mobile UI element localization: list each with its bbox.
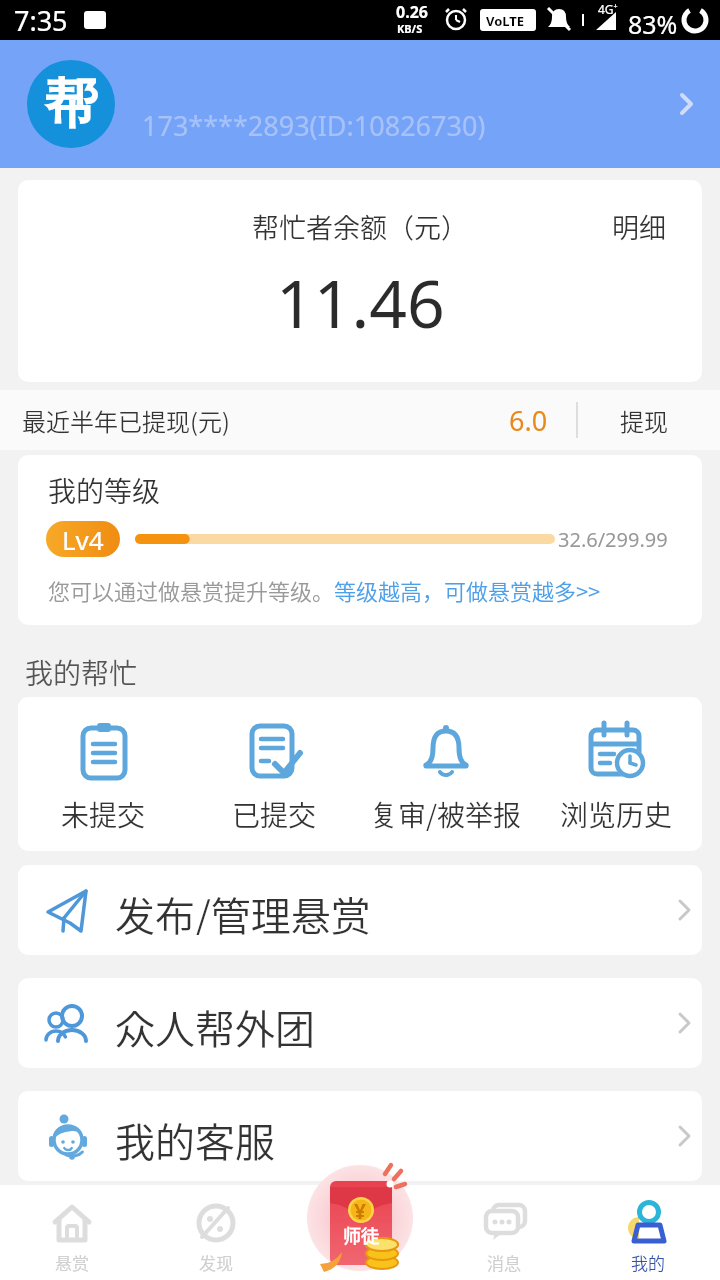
button[interactable]: ¥ xyxy=(300,1158,420,1278)
button[interactable]: 帮 xyxy=(0,40,720,168)
staticText: 师徒 xyxy=(343,1222,379,1248)
staticText: 众人帮外团 xyxy=(115,998,315,1048)
staticText: 173****2893(ID:10826730) xyxy=(142,107,486,144)
staticText: 32.6/299.99 xyxy=(558,526,668,553)
staticText: 11.46 xyxy=(276,257,445,337)
button[interactable]: 悬赏 xyxy=(0,1185,144,1280)
staticText: KB/S xyxy=(397,21,423,36)
staticText: 发布/管理悬赏 xyxy=(115,885,371,935)
button[interactable]: 我的 xyxy=(576,1185,720,1280)
staticText: 我的等级 xyxy=(48,470,161,511)
button[interactable]: 帮忙者余额（元） xyxy=(18,180,702,382)
staticText: 83% xyxy=(628,7,678,41)
staticText: 明细 xyxy=(612,207,666,246)
staticText: 未提交 xyxy=(61,794,146,835)
staticText: 帮忙者余额（元） xyxy=(252,207,468,246)
button[interactable]: 已提交 xyxy=(189,697,360,851)
staticText: 悬赏 xyxy=(55,1250,89,1275)
staticText: 已提交 xyxy=(232,794,317,835)
button[interactable]: 我的等级 xyxy=(18,455,702,625)
button[interactable]: 发现 xyxy=(144,1185,288,1280)
staticText: 最近半年已提现(元) xyxy=(22,403,230,438)
button[interactable]: 复审/被举报 xyxy=(360,697,531,851)
staticText: 0.26 xyxy=(396,1,428,23)
button[interactable] xyxy=(288,1185,432,1280)
staticText: 浏览历史 xyxy=(560,794,673,835)
button[interactable]: 消息 xyxy=(432,1185,576,1280)
staticText: 帮 xyxy=(44,70,98,138)
staticText: 7:35 xyxy=(14,2,68,39)
button[interactable]: 众人帮外团 xyxy=(18,978,702,1068)
staticText: 复审/被举报 xyxy=(370,794,521,835)
button[interactable]: 最近半年已提现(元) xyxy=(0,390,720,450)
button[interactable]: 浏览历史 xyxy=(531,697,702,851)
staticText: 4G⁺ xyxy=(598,1,618,17)
staticText: 提现 xyxy=(620,403,668,438)
staticText: 我的帮忙 xyxy=(25,652,138,693)
button[interactable]: 我的客服 xyxy=(18,1091,702,1181)
button[interactable]: 发布/管理悬赏 xyxy=(18,865,702,955)
staticText: 消息 xyxy=(487,1250,521,1275)
staticText: 我的客服 xyxy=(115,1111,275,1161)
button[interactable]: 未提交 xyxy=(18,697,189,851)
staticText: VoLTE xyxy=(486,12,525,30)
staticText: ¥ xyxy=(354,1197,367,1226)
staticText: 我的 xyxy=(631,1250,665,1275)
staticText: 发现 xyxy=(199,1250,233,1275)
staticText: Lv4 xyxy=(62,522,104,557)
staticText: 6.0 xyxy=(509,402,548,439)
staticText: 您可以通过做悬赏提升等级。等级越高，可做悬赏越多>> xyxy=(48,574,601,606)
